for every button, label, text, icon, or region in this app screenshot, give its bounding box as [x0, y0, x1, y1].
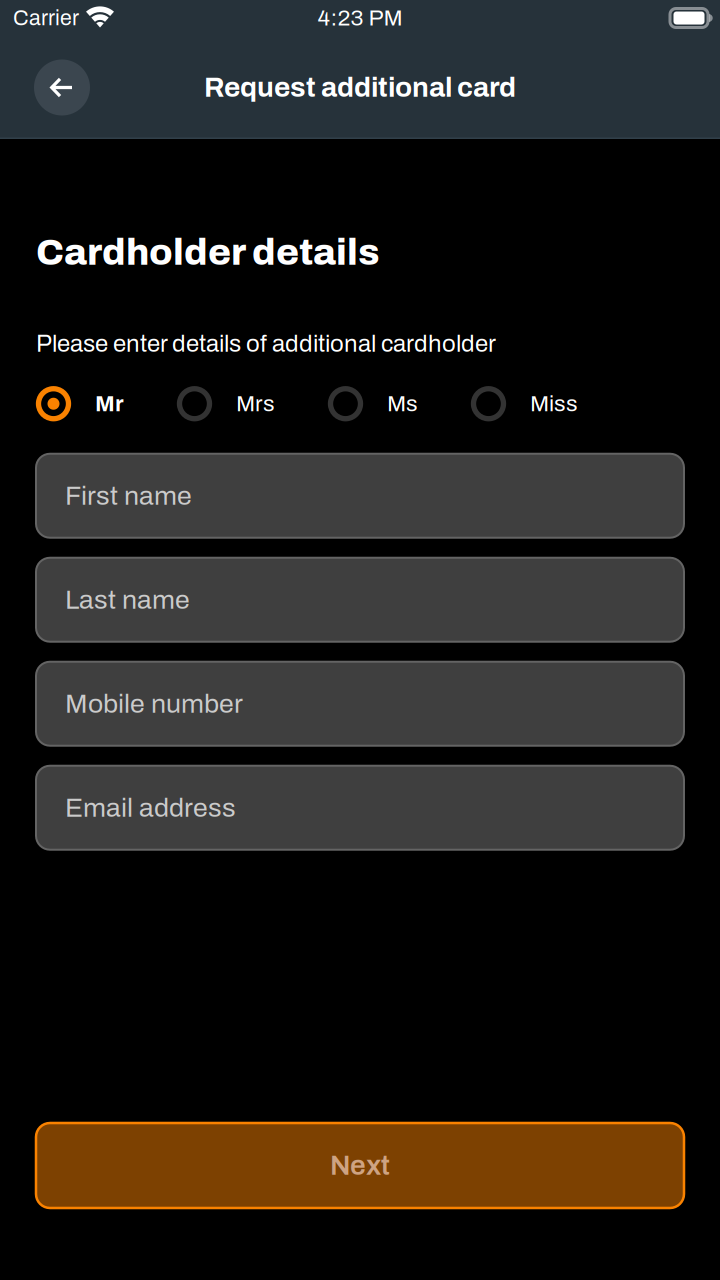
staticText: First name [65, 481, 192, 510]
button[interactable]: Next [36, 1123, 684, 1208]
button[interactable]: Back [34, 59, 90, 115]
button[interactable]: Mobile number [36, 662, 684, 746]
staticText: 4:23 PM [317, 6, 402, 30]
staticText: Request additional card [204, 72, 516, 103]
button[interactable]: Mrs [177, 384, 275, 424]
staticText: Cardholder details [36, 232, 380, 273]
button[interactable]: Last name [36, 558, 684, 642]
staticText: Miss [530, 391, 578, 416]
staticText: Ms [387, 391, 418, 416]
staticText: Mobile number [65, 689, 243, 718]
button[interactable]: Ms [328, 384, 418, 424]
button[interactable]: First name [36, 454, 684, 538]
staticText: Mrs [236, 391, 275, 416]
button[interactable]: Email address [36, 766, 684, 850]
staticText: Last name [65, 585, 190, 614]
button[interactable]: Mr [36, 384, 124, 424]
staticText: Mr [95, 391, 124, 416]
staticText: Please enter details of additional cardh… [36, 331, 496, 357]
staticText: Next [330, 1150, 390, 1181]
button[interactable]: Miss [471, 384, 578, 424]
staticText: Email address [65, 793, 236, 822]
staticText: Carrier [13, 6, 79, 30]
